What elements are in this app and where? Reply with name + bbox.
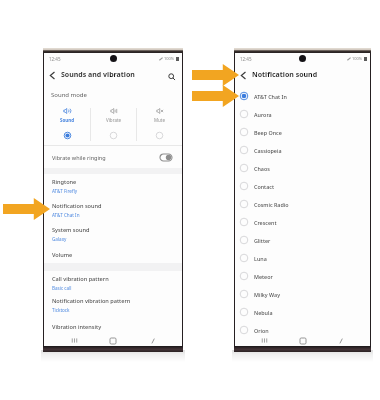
staticText: Mute (154, 117, 166, 123)
button[interactable]: Luna (235, 249, 370, 267)
staticText: AT&T Chat In (52, 212, 80, 218)
staticText: Chaos (254, 165, 270, 172)
staticText: Call vibration pattern (52, 275, 109, 283)
staticText: Meteor (254, 273, 273, 280)
button[interactable]: Back (143, 337, 163, 344)
button[interactable]: Crescent (235, 213, 370, 231)
other: Back (239, 71, 248, 80)
staticText: Basic call (52, 285, 72, 291)
staticText: Orion (254, 327, 269, 334)
button[interactable]: AT&T Chat In (235, 87, 370, 105)
staticText: Milky Way (254, 291, 281, 298)
staticText: Ticktock (52, 307, 70, 313)
staticText: AT&T Chat In (254, 93, 287, 100)
button[interactable]: System sound (44, 222, 182, 246)
button[interactable]: Cosmic Radio (235, 195, 370, 213)
staticText: Ringtone (52, 178, 77, 186)
button[interactable]: Vibration intensity (44, 315, 182, 339)
staticText: Vibrate while ringing (52, 154, 106, 161)
button[interactable]: Back (44, 65, 182, 85)
staticText: Sound mode (51, 91, 87, 99)
staticText: 12:45 (49, 56, 61, 62)
button[interactable] (160, 154, 172, 161)
staticText: Volume (52, 251, 73, 259)
staticText: Nebula (254, 309, 273, 316)
other: Back (48, 71, 57, 80)
button[interactable]: Meteor (235, 267, 370, 285)
staticText: Sound (60, 117, 74, 123)
button[interactable]: Glitter (235, 231, 370, 249)
button[interactable]: Nebula (235, 303, 370, 321)
staticText: Vibrate (106, 117, 122, 123)
button[interactable]: Recents (254, 337, 274, 344)
button[interactable]: Ringtone (44, 174, 182, 198)
staticText: 100% (352, 56, 363, 61)
button[interactable]: Back (331, 337, 351, 344)
staticText: Vibration intensity (52, 323, 102, 331)
button[interactable]: Recents (64, 337, 84, 344)
staticText: Cosmic Radio (254, 201, 289, 208)
button[interactable]: Mute (137, 104, 182, 145)
staticText: AT&T Firefly (52, 188, 77, 194)
button[interactable]: Vibrate while ringing (44, 146, 182, 168)
staticText: Contact (254, 183, 274, 190)
staticText: Glitter (254, 237, 271, 244)
button[interactable]: Notification vibration pattern (44, 294, 182, 315)
button[interactable]: Vibrate (91, 104, 136, 145)
staticText: Beep Once (254, 129, 282, 136)
button[interactable]: Orion (235, 321, 370, 339)
button[interactable]: Home (293, 337, 313, 344)
staticText: Notification sound (252, 70, 318, 80)
button[interactable]: Chaos (235, 159, 370, 177)
button[interactable]: Volume (44, 246, 182, 263)
button[interactable]: Home (103, 337, 123, 344)
button[interactable]: Milky Way (235, 285, 370, 303)
staticText: Luna (254, 255, 267, 262)
button[interactable]: Call vibration pattern (44, 271, 182, 294)
staticText: System sound (52, 226, 90, 234)
button[interactable]: Sound (44, 104, 90, 145)
button[interactable]: Search (167, 72, 177, 82)
button[interactable]: Beep Once (235, 123, 370, 141)
staticText: Galaxy (52, 236, 67, 242)
button[interactable]: Aurora (235, 105, 370, 123)
staticText: 12:45 (240, 56, 252, 62)
staticText: Crescent (254, 219, 277, 226)
button[interactable]: Contact (235, 177, 370, 195)
staticText: Notification sound (52, 202, 102, 210)
staticText: Aurora (254, 111, 272, 118)
staticText: Cassiopeia (254, 147, 282, 154)
button[interactable]: Notification sound (44, 198, 182, 222)
staticText: Notification vibration pattern (52, 297, 131, 305)
staticText: 100% (164, 56, 175, 61)
button[interactable]: Cassiopeia (235, 141, 370, 159)
button[interactable]: Back (235, 65, 370, 85)
staticText: Sounds and vibration (61, 70, 135, 80)
